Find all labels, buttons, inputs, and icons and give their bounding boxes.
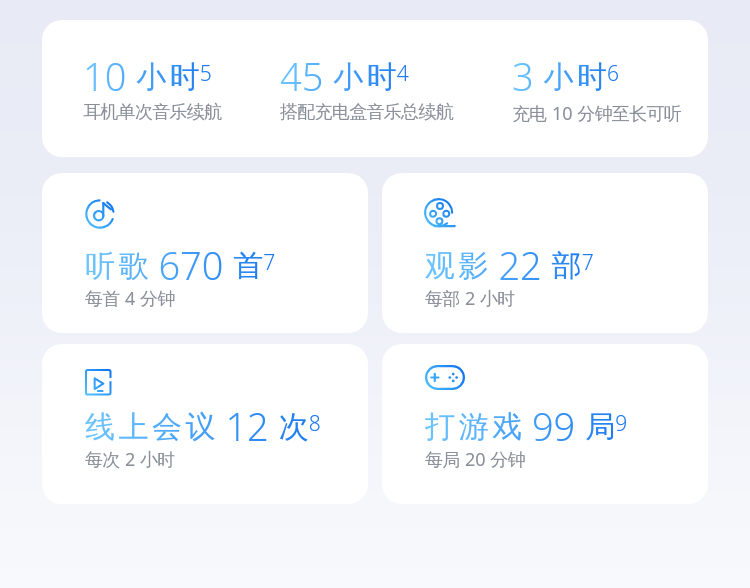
button[interactable]: 线上会议 12 次8: [42, 344, 368, 504]
button[interactable]: 听歌 670 首7: [42, 173, 368, 333]
staticText: 45 小时4: [280, 50, 409, 102]
staticText: 10 小时5: [83, 50, 212, 102]
staticText: 打游戏 99 局9: [425, 400, 628, 452]
button[interactable]: 耳机单次音乐续航: [42, 20, 708, 157]
staticText: 听歌 670 首7: [85, 239, 276, 291]
staticText: 每部 2 小时: [425, 286, 516, 311]
button[interactable]: 观影 22 部7: [382, 173, 708, 333]
staticText: 观影 22 部7: [425, 239, 594, 291]
button[interactable]: 打游戏 99 局9: [382, 344, 708, 504]
staticText: 线上会议 12 次8: [85, 400, 321, 452]
staticText: 耳机单次音乐续航: [83, 101, 223, 124]
staticText: 每首 4 分钟: [85, 286, 176, 311]
staticText: 搭配充电盒音乐总续航: [280, 101, 454, 124]
staticText: 充电 10 分钟至长可听: [512, 101, 682, 126]
staticText: 3 小时6: [512, 50, 620, 102]
staticText: 每局 20 分钟: [425, 447, 526, 472]
staticText: 每次 2 小时: [85, 447, 176, 472]
